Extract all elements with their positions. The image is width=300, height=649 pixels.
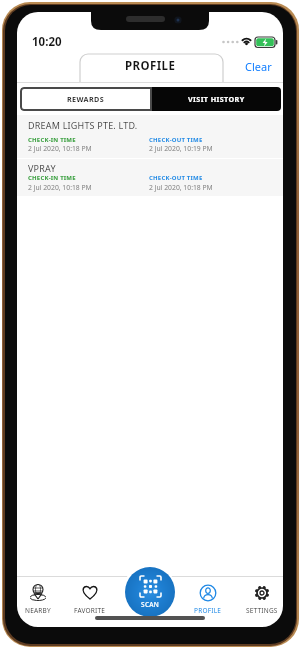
button[interactable]: NEARBY <box>17 583 63 619</box>
button[interactable]: SETTINGS <box>237 583 283 619</box>
staticText: 2 Jul 2020, 10:19 PM <box>149 144 213 153</box>
staticText: 10:20 <box>32 34 62 50</box>
staticText: PROFILE <box>125 58 176 74</box>
button[interactable]: PROFILE <box>183 583 233 619</box>
button[interactable]: DREAM LIGHTS PTE. LTD. <box>17 115 283 158</box>
staticText: VPRAY <box>28 162 56 174</box>
staticText: CHECK-IN TIME <box>28 136 76 144</box>
staticText: REWARDS <box>67 94 105 104</box>
staticText: VISIT HISTORY <box>188 94 245 104</box>
button[interactable]: VISIT HISTORY <box>152 87 281 111</box>
staticText: 2 Jul 2020, 10:18 PM <box>28 183 92 192</box>
staticText: PROFILE <box>194 606 222 615</box>
button[interactable]: FAVORITE <box>65 583 115 619</box>
staticText: Clear <box>245 59 272 74</box>
staticText: 2 Jul 2020, 10:18 PM <box>28 144 92 153</box>
button[interactable]: VPRAY <box>17 159 283 196</box>
button[interactable]: REWARDS <box>20 87 152 111</box>
staticText: SETTINGS <box>246 606 278 615</box>
staticText: NEARBY <box>25 606 51 615</box>
staticText: 2 Jul 2020, 10:18 PM <box>149 183 213 192</box>
staticText: CHECK-OUT TIME <box>149 136 203 144</box>
staticText: CHECK-OUT TIME <box>149 174 203 182</box>
button[interactable]: SCAN <box>125 567 175 617</box>
button[interactable]: Clear <box>238 57 278 75</box>
staticText: DREAM LIGHTS PTE. LTD. <box>28 119 138 131</box>
staticText: FAVORITE <box>74 606 106 615</box>
staticText: SCAN <box>141 600 160 609</box>
staticText: CHECK-IN TIME <box>28 174 76 182</box>
